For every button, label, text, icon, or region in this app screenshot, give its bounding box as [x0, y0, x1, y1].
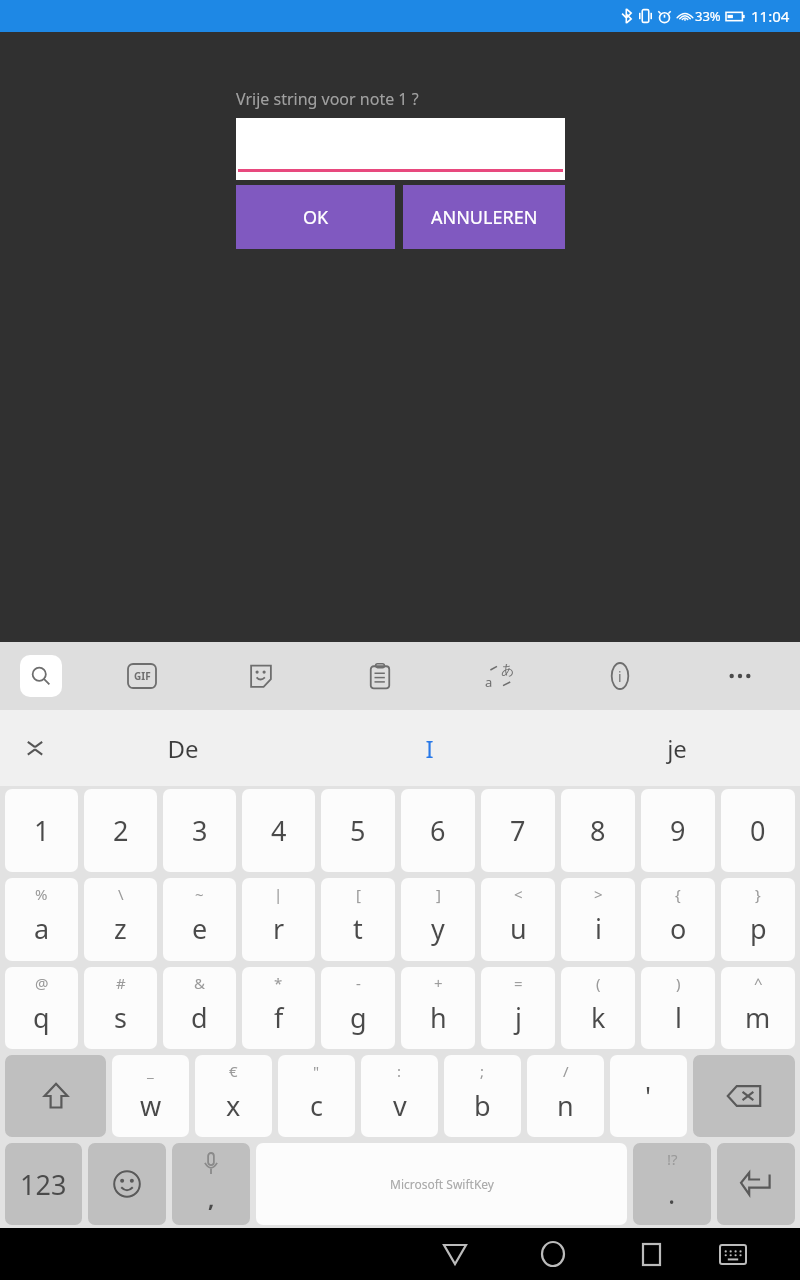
staticText: 33%	[695, 7, 721, 25]
button[interactable]: @	[5, 967, 78, 1049]
button[interactable]: 2	[84, 789, 157, 872]
button[interactable]: ;	[444, 1055, 521, 1137]
button[interactable]: >	[561, 878, 635, 961]
button[interactable]: je	[553, 710, 800, 786]
button[interactable]: 9	[641, 789, 715, 872]
button[interactable]: Collapse	[14, 727, 56, 769]
staticText: I	[425, 732, 434, 765]
staticText: 123	[20, 1166, 67, 1203]
button[interactable]: :	[361, 1055, 438, 1137]
button[interactable]: emoji	[88, 1143, 166, 1225]
button[interactable]: ^	[721, 967, 795, 1049]
staticText: "	[313, 1061, 320, 1081]
button[interactable]: OK	[236, 185, 395, 249]
button[interactable]: De	[60, 710, 306, 786]
button[interactable]: 123	[5, 1143, 82, 1225]
staticText: p	[750, 910, 767, 947]
staticText: 2	[113, 812, 129, 849]
staticText: GIF	[134, 669, 151, 683]
button[interactable]: Search	[20, 655, 62, 697]
staticText: a	[485, 673, 493, 691]
button[interactable]: 5	[321, 789, 395, 872]
staticText: De	[167, 732, 199, 765]
button[interactable]: 7	[481, 789, 555, 872]
button[interactable]: Recents	[620, 1228, 682, 1280]
button[interactable]: €	[195, 1055, 272, 1137]
button[interactable]: Clipboard	[320, 642, 440, 710]
button[interactable]: Back	[424, 1228, 486, 1280]
button[interactable]: _	[112, 1055, 189, 1137]
button[interactable]: =	[481, 967, 555, 1049]
button[interactable]: 4	[242, 789, 315, 872]
button[interactable]: [	[321, 878, 395, 961]
staticText: e	[192, 910, 208, 947]
button[interactable]: #	[84, 967, 157, 1049]
button[interactable]: %	[5, 878, 78, 961]
button[interactable]: 6	[401, 789, 475, 872]
staticText: \	[118, 884, 124, 904]
button[interactable]: !?	[633, 1143, 711, 1225]
button[interactable]: Home	[522, 1228, 584, 1280]
button[interactable]: +	[401, 967, 475, 1049]
button[interactable]: 3	[163, 789, 236, 872]
staticText: >	[594, 884, 603, 904]
button[interactable]: <	[481, 878, 555, 961]
button[interactable]	[236, 118, 565, 180]
button[interactable]: &	[163, 967, 236, 1049]
staticText: ^	[754, 973, 763, 993]
staticText: OK	[303, 205, 329, 230]
staticText: 0	[750, 812, 766, 849]
staticText: 3	[192, 812, 208, 849]
button[interactable]: back	[693, 1055, 795, 1137]
staticText: *	[274, 973, 283, 993]
staticText: i	[618, 667, 622, 686]
button[interactable]: {	[641, 878, 715, 961]
button[interactable]: 1	[5, 789, 78, 872]
button[interactable]: GIF	[82, 642, 201, 710]
staticText: <	[514, 884, 523, 904]
button[interactable]: )	[641, 967, 715, 1049]
staticText: :	[397, 1061, 402, 1081]
staticText: Vrije string voor note 1 ?	[236, 88, 419, 110]
button[interactable]: I	[306, 710, 553, 786]
staticText: h	[430, 999, 447, 1036]
staticText: =	[514, 973, 523, 993]
button[interactable]: '	[610, 1055, 687, 1137]
staticText: |	[274, 884, 283, 904]
staticText: c	[310, 1087, 323, 1124]
staticText: '	[645, 1078, 652, 1115]
staticText: s	[114, 999, 127, 1036]
button[interactable]: space	[256, 1143, 627, 1225]
button[interactable]: Translate	[440, 642, 560, 710]
button[interactable]: |	[242, 878, 315, 961]
button[interactable]: ANNULEREN	[403, 185, 565, 249]
button[interactable]: 0	[721, 789, 795, 872]
button[interactable]: /	[527, 1055, 604, 1137]
button[interactable]: "	[278, 1055, 355, 1137]
staticText: b	[474, 1087, 491, 1124]
button[interactable]: ]	[401, 878, 475, 961]
staticText: €	[229, 1061, 238, 1081]
button[interactable]: -	[321, 967, 395, 1049]
staticText: w	[140, 1087, 162, 1124]
staticText: u	[510, 910, 527, 947]
button[interactable]: More	[680, 642, 800, 710]
staticText: je	[667, 732, 687, 765]
staticText: x	[226, 1087, 241, 1124]
button[interactable]: shift	[5, 1055, 106, 1137]
button[interactable]: (	[561, 967, 635, 1049]
button[interactable]: ,	[172, 1143, 250, 1225]
button[interactable]: 8	[561, 789, 635, 872]
button[interactable]: }	[721, 878, 795, 961]
button[interactable]: Keyboard	[702, 1228, 764, 1280]
staticText: d	[191, 999, 208, 1036]
button[interactable]: Info	[560, 642, 680, 710]
staticText: l	[675, 999, 682, 1036]
button[interactable]: Stickers	[201, 642, 320, 710]
button[interactable]: ~	[163, 878, 236, 961]
button[interactable]: \	[84, 878, 157, 961]
staticText: v	[393, 1087, 407, 1124]
button[interactable]: *	[242, 967, 315, 1049]
button[interactable]: enter	[717, 1143, 795, 1225]
staticText: q	[33, 999, 50, 1036]
